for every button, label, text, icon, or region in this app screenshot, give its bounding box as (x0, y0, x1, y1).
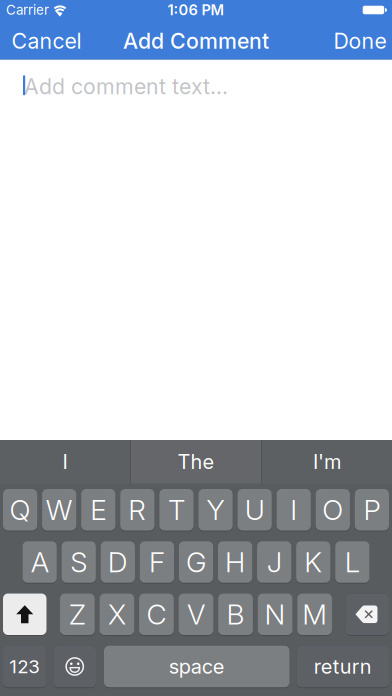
staticText: I (62, 450, 67, 474)
button[interactable]: J (257, 541, 291, 584)
button[interactable]: R (120, 489, 154, 531)
staticText: M (302, 598, 327, 631)
staticText: Q (10, 493, 31, 526)
button[interactable]: B (218, 593, 253, 636)
staticText: 1:06 PM (167, 1, 224, 19)
button[interactable]: Q (3, 489, 37, 531)
button[interactable]: W (42, 489, 76, 531)
staticText: V (187, 598, 205, 631)
button[interactable]: X (100, 593, 134, 636)
button[interactable]: G (179, 541, 213, 584)
button[interactable]: L (335, 541, 369, 584)
button[interactable]: space (104, 646, 289, 688)
staticText: B (227, 598, 245, 631)
button[interactable]: A (22, 541, 57, 584)
button[interactable]: M (297, 593, 332, 636)
button[interactable]: H (218, 541, 252, 584)
staticText: T (168, 493, 185, 526)
staticText: Y (206, 493, 224, 526)
button[interactable]: D (101, 541, 135, 584)
staticText: D (108, 545, 128, 578)
staticText: K (304, 545, 322, 578)
staticText: X (108, 598, 126, 631)
staticText: Carrier (6, 2, 49, 18)
button[interactable]: S (62, 541, 96, 584)
staticText: Cancel (11, 28, 81, 54)
button[interactable]: U (237, 489, 272, 531)
staticText: J (267, 545, 282, 578)
staticText: U (245, 493, 265, 526)
staticText: R (128, 493, 146, 526)
staticText: C (146, 598, 166, 631)
button[interactable]: O (316, 489, 350, 531)
button[interactable]: Emoji (53, 646, 96, 688)
staticText: S (70, 545, 87, 578)
staticText: I (290, 493, 297, 526)
button[interactable]: I (0, 440, 130, 483)
button[interactable]: C (139, 593, 174, 636)
button[interactable]: Z (60, 593, 95, 636)
staticText: P (363, 493, 380, 526)
staticText: Add Comment (123, 28, 269, 54)
staticText: H (225, 545, 245, 578)
staticText: W (46, 493, 73, 526)
staticText: return (314, 655, 372, 678)
button[interactable]: N (258, 593, 292, 636)
button[interactable]: Delete (345, 593, 389, 636)
button[interactable]: E (81, 489, 115, 531)
button[interactable]: The (131, 440, 261, 483)
staticText: Done (333, 28, 386, 54)
staticText: Z (69, 598, 86, 631)
staticText: I'm (313, 450, 341, 474)
staticText: space (169, 655, 225, 678)
staticText: A (31, 545, 49, 578)
button[interactable]: Cancel (11, 28, 81, 54)
staticText: The (177, 450, 214, 474)
staticText: N (265, 598, 286, 631)
button[interactable]: V (179, 593, 213, 636)
staticText: Add comment text... (24, 74, 228, 99)
button[interactable]: Done (333, 28, 386, 54)
button[interactable]: T (159, 489, 194, 531)
staticText: O (322, 493, 343, 526)
button[interactable]: return (296, 646, 389, 688)
button[interactable]: Shift (3, 593, 46, 636)
button[interactable]: 123 (3, 646, 46, 688)
staticText: F (149, 545, 165, 578)
staticText: 123 (9, 655, 40, 677)
staticText: E (90, 493, 106, 526)
button[interactable]: I'm (262, 440, 392, 483)
button[interactable]: Y (198, 489, 233, 531)
button[interactable]: F (140, 541, 174, 584)
button[interactable]: I (277, 489, 311, 531)
staticText: G (186, 545, 206, 578)
button[interactable]: P (355, 489, 389, 531)
staticText: L (345, 545, 360, 578)
button[interactable]: K (296, 541, 330, 584)
